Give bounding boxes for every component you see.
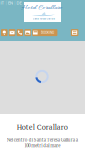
staticText: DE <box>16 1 21 5</box>
button[interactable]: EN <box>8 1 13 5</box>
staticText: BOOKING <box>41 31 54 34</box>
staticText: Nel centro di Santa Teresa Gallura a <box>7 137 78 143</box>
button[interactable]: Call <box>17 29 23 36</box>
button[interactable]: DE <box>16 1 21 5</box>
staticText: 100 metri dal mare <box>24 142 60 149</box>
button[interactable]: BOOKING <box>38 29 57 36</box>
button[interactable]: Map <box>1 29 8 36</box>
button[interactable]: Gallery <box>24 29 31 36</box>
button[interactable]: IT <box>1 1 5 5</box>
staticText: IT <box>1 1 5 5</box>
staticText: Santa Teresa Gallura <box>32 17 54 20</box>
button[interactable]: Email <box>9 29 15 36</box>
button[interactable]: Menu <box>71 29 78 36</box>
staticText: Hotel Corallaro <box>17 122 68 132</box>
button[interactable]: Offers <box>32 29 39 36</box>
staticText: Hotel Corallaro <box>21 3 62 12</box>
staticText: EN <box>8 1 13 5</box>
